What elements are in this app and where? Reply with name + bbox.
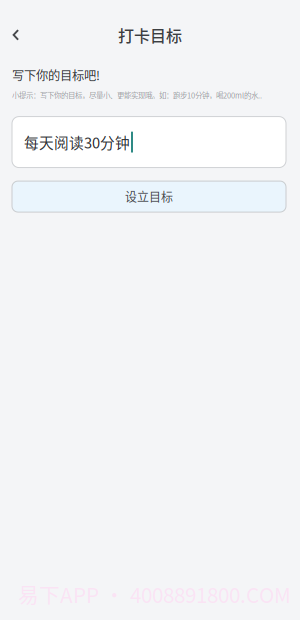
staticText: 打卡目标	[118, 23, 182, 47]
button[interactable]: Back	[0, 14, 32, 56]
staticText: 每天阅读30分钟	[24, 131, 130, 153]
staticText: 小提示：写下你的目标，尽量小、更能实现哦。如：跑步10分钟，喝200ml的水..	[12, 90, 262, 101]
staticText: 写下你的目标吧!	[12, 66, 100, 84]
staticText: 设立目标	[125, 188, 173, 205]
staticText: 易下APP · 4008891800.COM	[18, 579, 291, 609]
button[interactable]: 设立目标	[12, 181, 286, 212]
